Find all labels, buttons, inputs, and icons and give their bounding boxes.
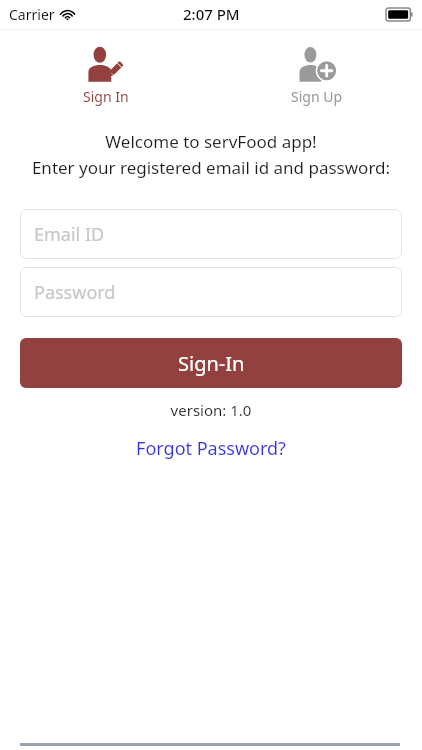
staticText: Carrier xyxy=(9,5,55,24)
button[interactable]: Sign In xyxy=(65,41,147,108)
staticText: Welcome to servFood app! xyxy=(0,130,422,153)
staticText: version: 1.0 xyxy=(0,400,422,420)
button[interactable]: Password xyxy=(20,267,402,317)
button[interactable]: Sign Up xyxy=(273,41,361,108)
staticText: Forgot Password? xyxy=(136,436,286,461)
staticText: Sign-In xyxy=(178,350,245,377)
button[interactable]: Email ID xyxy=(20,209,402,259)
staticText: Sign Up xyxy=(291,87,343,106)
button[interactable]: Forgot Password? xyxy=(0,436,422,461)
staticText: Email ID xyxy=(34,222,105,247)
other: Sign Up xyxy=(295,43,339,85)
staticText: 2:07 PM xyxy=(183,4,240,24)
other: Sign In xyxy=(84,43,128,85)
button[interactable]: Sign-In xyxy=(20,338,402,388)
staticText: Password xyxy=(34,280,116,305)
staticText: Enter your registered email id and passw… xyxy=(0,156,422,179)
staticText: Sign In xyxy=(83,87,129,106)
